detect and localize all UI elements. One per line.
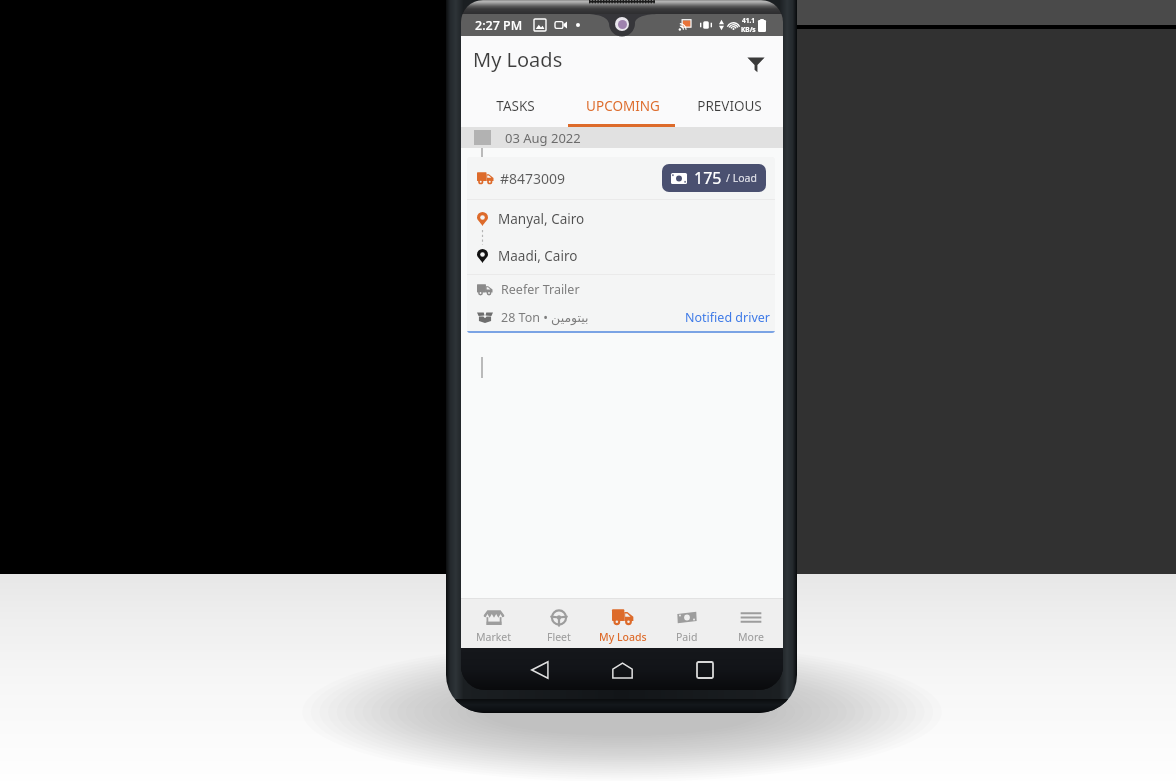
staticText: Fleet: [547, 630, 571, 644]
staticText: #8473009: [500, 169, 566, 188]
button[interactable]: Market: [461, 609, 526, 644]
staticText: Maadi, Cairo: [498, 247, 578, 265]
staticText: My Loads: [473, 46, 563, 73]
staticText: 03 Aug 2022: [505, 129, 581, 147]
staticText: Manyal, Cairo: [498, 210, 585, 228]
button[interactable]: Filter: [739, 47, 773, 81]
staticText: My Loads: [599, 630, 647, 644]
staticText: More: [738, 630, 764, 644]
button[interactable]: More: [719, 609, 783, 644]
button[interactable]: My Loads: [591, 609, 655, 644]
staticText: Market: [476, 630, 512, 644]
button[interactable]: PREVIOUS: [676, 91, 783, 127]
staticText: 175: [694, 167, 722, 189]
button[interactable]: Fleet: [526, 609, 591, 644]
button[interactable]: UPCOMING: [569, 91, 676, 127]
button[interactable]: Home: [606, 654, 638, 686]
staticText: UPCOMING: [586, 97, 660, 115]
staticText: Paid: [676, 630, 698, 644]
button[interactable]: Paid: [655, 609, 719, 644]
staticText: PREVIOUS: [697, 97, 762, 115]
staticText: Reefer Trailer: [501, 281, 580, 298]
button[interactable]: #8473009: [467, 157, 775, 333]
button[interactable]: Notified driver: [685, 309, 770, 326]
button[interactable]: Back: [524, 654, 556, 686]
staticText: / Load: [726, 171, 757, 185]
staticText: 41.1: [742, 16, 755, 25]
button[interactable]: TASKS: [461, 91, 569, 127]
staticText: KB/s: [741, 25, 756, 34]
staticText: 28 Ton • بيتومين: [501, 309, 589, 326]
button[interactable]: Recent apps: [689, 654, 721, 686]
staticText: 2:27 PM: [475, 17, 523, 34]
staticText: TASKS: [496, 97, 535, 115]
